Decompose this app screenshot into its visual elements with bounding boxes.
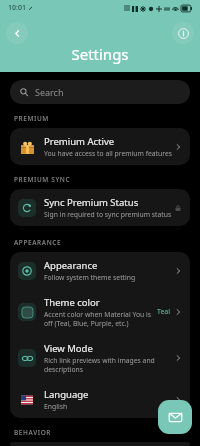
button[interactable]: Appearance xyxy=(10,252,190,289)
button[interactable]: Premium Active xyxy=(10,128,190,165)
staticText: Rich link previews with images and descr… xyxy=(44,356,174,374)
staticText: English xyxy=(44,402,68,411)
staticText: Premium Active xyxy=(44,135,115,148)
button[interactable]: Language xyxy=(10,381,190,418)
button[interactable]: Theme color xyxy=(10,289,190,335)
staticText: Teal xyxy=(157,307,171,317)
staticText: Sign in required to sync premium status xyxy=(44,210,172,219)
staticText: APPEARANCE xyxy=(14,238,62,247)
staticText: 10:01 xyxy=(8,3,26,13)
button[interactable]: Search xyxy=(10,80,190,104)
button[interactable]: Send feedback xyxy=(158,400,192,434)
staticText: Language xyxy=(44,388,89,401)
staticText: PREMIUM xyxy=(14,114,49,123)
staticText: You have access to all premium features xyxy=(44,149,173,158)
button[interactable]: View Mode xyxy=(10,335,190,381)
staticText: Appearance xyxy=(44,259,98,272)
button[interactable]: Back xyxy=(6,22,28,44)
staticText: BEHAVIOR xyxy=(14,428,52,437)
staticText: View Mode xyxy=(44,342,93,355)
staticText: Search xyxy=(35,86,64,98)
staticText: Sync Premium Status xyxy=(44,196,139,209)
button[interactable]: Sync Premium Status xyxy=(10,189,190,226)
button[interactable]: Info xyxy=(172,22,194,44)
staticText: Accent color when Material You is off (T… xyxy=(44,310,157,328)
staticText: Follow system theme setting xyxy=(44,273,136,282)
staticText: PREMIUM SYNC xyxy=(14,175,71,184)
staticText: Settings xyxy=(71,44,129,64)
staticText: Theme color xyxy=(44,296,100,309)
